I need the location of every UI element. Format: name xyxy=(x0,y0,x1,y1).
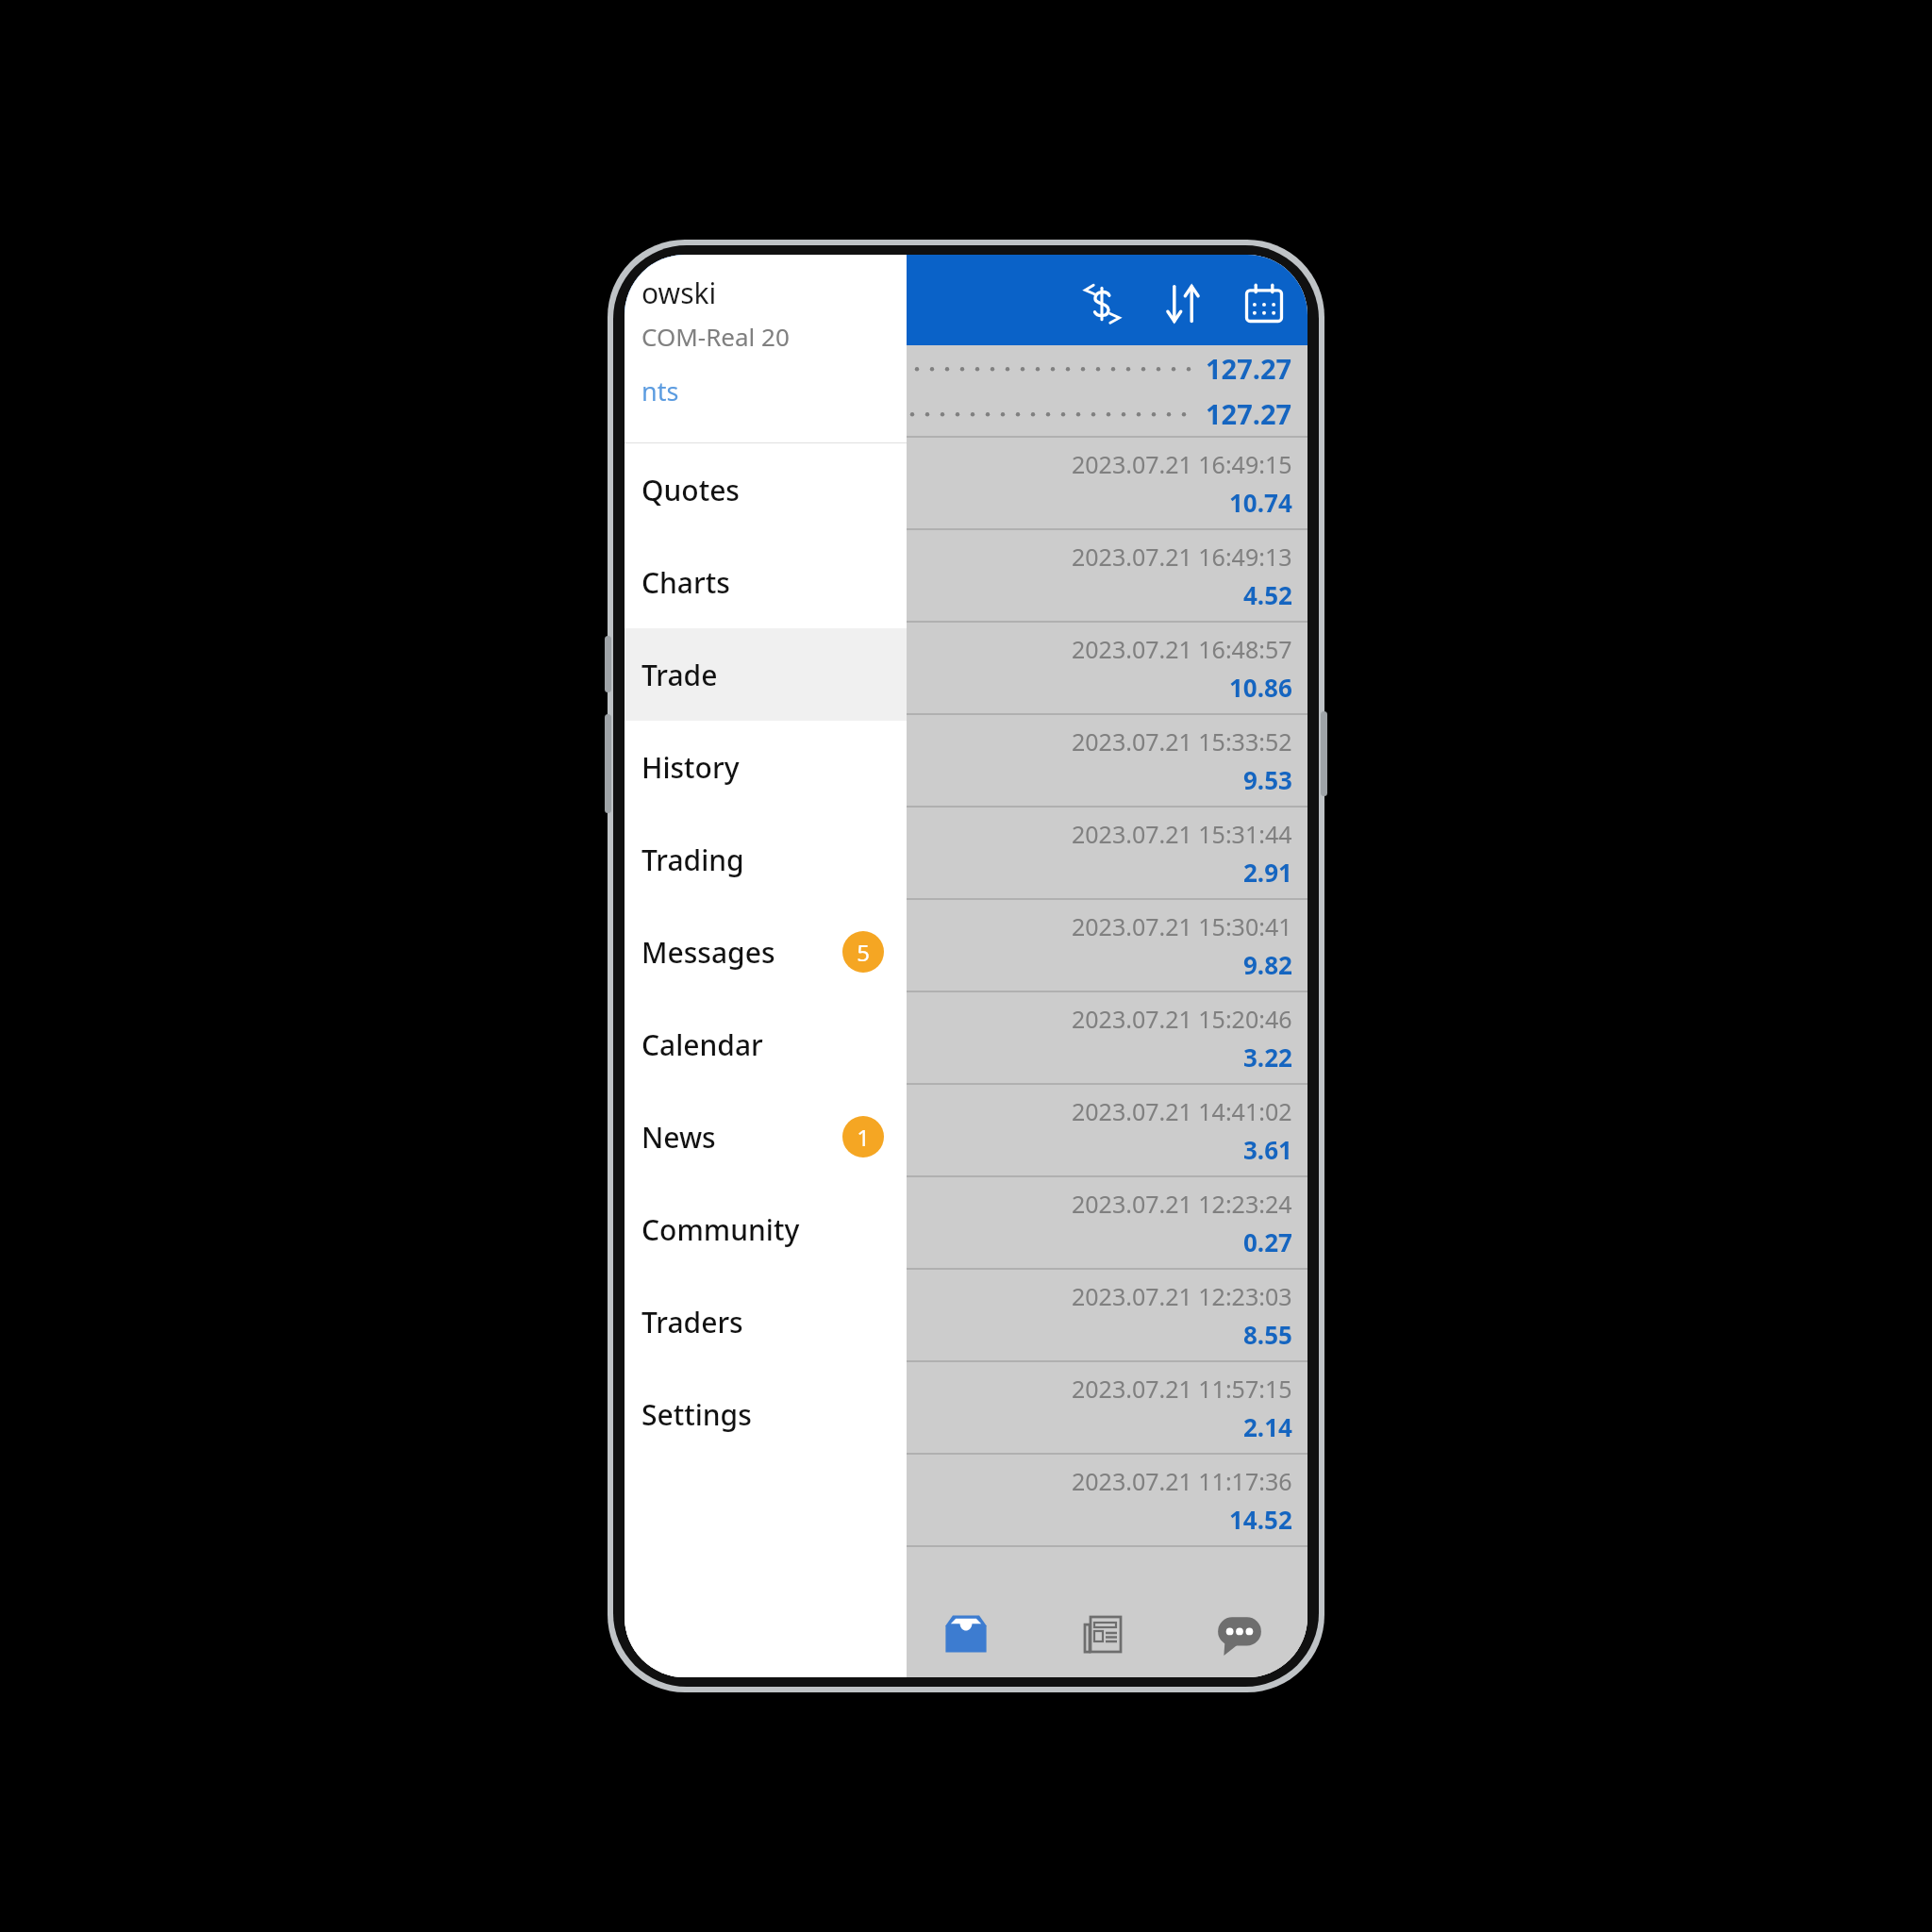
button[interactable]: 2023.07.21 15:30:41 xyxy=(625,900,1307,991)
button[interactable]: 2023.07.21 11:57:15 xyxy=(625,1362,1307,1453)
staticText: 14.52 xyxy=(1229,1503,1292,1536)
button[interactable]: Traders xyxy=(625,1275,907,1368)
staticText: Settings xyxy=(641,1395,752,1434)
button[interactable]: Balance xyxy=(625,391,1307,436)
staticText: Messages xyxy=(641,933,775,972)
staticText: 4.52 xyxy=(1243,578,1292,611)
staticText: 2.14 xyxy=(1243,1410,1292,1443)
staticText: 2023.07.21 15:33:52 xyxy=(1072,725,1292,758)
staticText: 2023.07.21 15:20:46 xyxy=(1072,1003,1292,1035)
button[interactable]: Profit xyxy=(625,345,1307,391)
staticText: 1 xyxy=(857,1122,870,1153)
staticText: 2023.07.21 16:49:13 xyxy=(1072,541,1292,573)
staticText: Calendar xyxy=(641,1025,763,1064)
staticText: 0.27 xyxy=(1243,1225,1292,1258)
staticText: 2023.07.21 16:49:15 xyxy=(1072,448,1292,480)
staticText: 8.55 xyxy=(1243,1318,1292,1351)
staticText: 2.91 xyxy=(1243,856,1292,889)
button[interactable]: 2023.07.21 16:49:13 xyxy=(625,530,1307,621)
button[interactable]: Currency exchange xyxy=(1068,270,1136,338)
staticText: Trade xyxy=(641,656,718,694)
staticText: 10.86 xyxy=(1229,671,1292,704)
staticText: 2023.07.21 11:17:36 xyxy=(1072,1465,1292,1497)
staticText: Charts xyxy=(641,563,730,602)
button[interactable]: 2023.07.21 15:31:44 xyxy=(625,808,1307,898)
button[interactable]: 2023.07.21 15:20:46 xyxy=(625,992,1307,1083)
staticText: Traders xyxy=(641,1303,743,1341)
staticText: 2023.07.21 12:23:24 xyxy=(1072,1188,1292,1220)
button[interactable]: Quotes xyxy=(625,443,907,536)
staticText: 9.53 xyxy=(1243,763,1292,796)
staticText: 127.27 xyxy=(1206,350,1292,387)
staticText: Trading xyxy=(641,841,744,879)
button[interactable]: 2023.07.21 12:23:03 xyxy=(625,1270,1307,1360)
staticText: 2023.07.21 12:23:03 xyxy=(1072,1280,1292,1312)
staticText: 127.27 xyxy=(1206,395,1292,432)
staticText: 2023.07.21 15:31:44 xyxy=(1072,818,1292,850)
staticText: Quotes xyxy=(641,471,740,509)
button[interactable]: 2023.07.21 15:33:52 xyxy=(625,715,1307,806)
button[interactable]: Calendar xyxy=(625,998,907,1091)
button[interactable]: 2023.07.21 12:23:24 xyxy=(625,1177,1307,1268)
staticText: 2023.07.21 11:57:15 xyxy=(1072,1373,1292,1405)
button[interactable]: History xyxy=(1034,1591,1171,1677)
button[interactable]: Settings xyxy=(625,1368,907,1460)
button[interactable]: Quotes xyxy=(625,1591,760,1677)
staticText: 9.82 xyxy=(1243,948,1292,981)
button[interactable]: 2023.07.21 16:49:15 xyxy=(625,438,1307,528)
staticText: 5 xyxy=(857,937,870,968)
staticText: owski xyxy=(641,274,717,312)
button[interactable]: News xyxy=(625,1091,907,1183)
staticText: nts xyxy=(641,374,679,408)
button[interactable]: Charts xyxy=(625,536,907,628)
staticText: 3.61 xyxy=(1243,1133,1292,1166)
button[interactable]: Community xyxy=(625,1183,907,1275)
staticText: News xyxy=(641,1118,716,1157)
button[interactable]: 2023.07.21 11:17:36 xyxy=(625,1455,1307,1545)
staticText: 2023.07.21 15:30:41 xyxy=(1072,910,1292,942)
button[interactable]: Select period xyxy=(1230,270,1298,338)
button[interactable]: 2023.07.21 16:48:57 xyxy=(625,623,1307,713)
button[interactable]: Trading xyxy=(625,813,907,906)
button[interactable]: Sort xyxy=(1149,270,1217,338)
staticText: 2023.07.21 16:48:57 xyxy=(1072,633,1292,665)
staticText: History xyxy=(641,748,740,787)
button[interactable]: Messages xyxy=(625,906,907,998)
button[interactable]: Messages xyxy=(1171,1591,1307,1677)
button[interactable]: 2023.07.21 14:41:02 xyxy=(625,1085,1307,1175)
staticText: 3.22 xyxy=(1243,1041,1292,1074)
staticText: 2023.07.21 14:41:02 xyxy=(1072,1095,1292,1127)
staticText: Balance xyxy=(640,398,724,429)
staticText: Community xyxy=(641,1210,800,1249)
button[interactable]: Trade xyxy=(897,1591,1034,1677)
button[interactable]: nts xyxy=(641,374,679,408)
button[interactable]: Trade xyxy=(625,628,907,721)
button[interactable]: History xyxy=(625,721,907,813)
staticText: COM-Real 20 xyxy=(641,320,790,353)
staticText: 10.74 xyxy=(1229,486,1292,519)
